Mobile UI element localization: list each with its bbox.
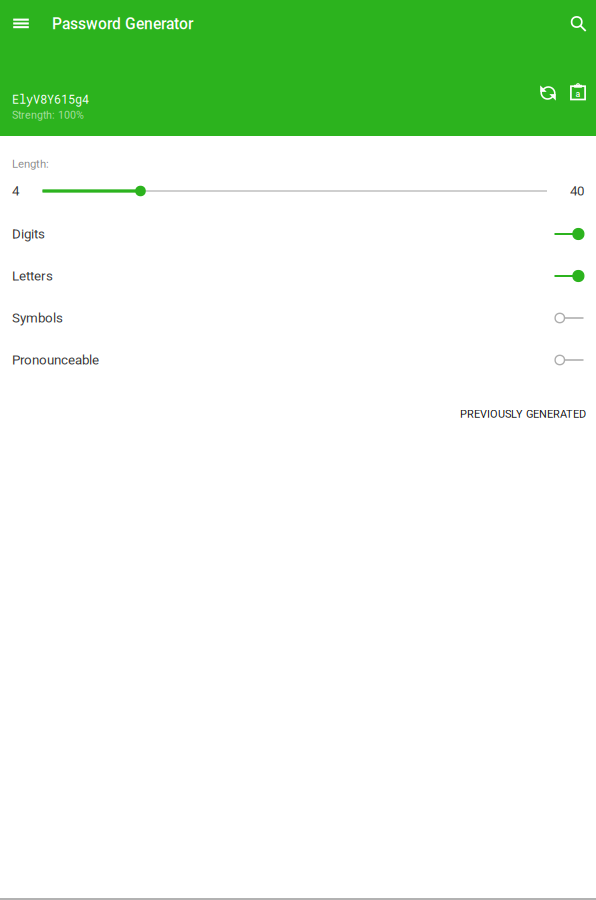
staticText: 40 [570, 183, 584, 199]
staticText: a [575, 89, 580, 99]
staticText: Digits [12, 226, 45, 242]
staticText: Pronounceable [12, 352, 99, 368]
button[interactable]: Pronounceable [0, 339, 596, 381]
button[interactable]: Symbols [0, 297, 596, 339]
button[interactable]: PREVIOUSLY GENERATED [450, 398, 596, 430]
staticText: Length: [12, 157, 49, 171]
staticText: 4 [12, 183, 19, 199]
button[interactable]: Menu [0, 0, 42, 48]
staticText: Strength: 100% [12, 109, 84, 121]
staticText: ElyV8Y615g4 [12, 91, 89, 107]
button[interactable]: Letters [0, 255, 596, 297]
staticText: Letters [12, 268, 53, 284]
staticText: Password Generator [52, 15, 194, 33]
button[interactable]: Digits [0, 213, 596, 255]
staticText: Symbols [12, 310, 63, 326]
button[interactable]: Regenerate password [533, 78, 563, 108]
button[interactable]: Search [561, 0, 596, 48]
staticText: PREVIOUSLY GENERATED [460, 408, 586, 420]
button[interactable]: Copy to clipboard [563, 78, 593, 108]
